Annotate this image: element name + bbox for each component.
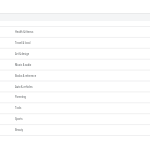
staticText: Health & fitness <box>15 31 34 34</box>
staticText: Travel & local <box>15 42 31 45</box>
button[interactable]: Music & audio <box>0 59 150 70</box>
staticText: Beauty <box>15 129 23 132</box>
staticText: Art & design <box>15 53 30 56</box>
button[interactable]: Travel & local <box>0 37 150 48</box>
staticText: Parenting <box>15 96 27 99</box>
button[interactable]: Sports <box>0 113 150 124</box>
staticText: Sports <box>15 118 23 121</box>
button[interactable]: Tools <box>0 102 150 113</box>
staticText: Books & reference <box>15 75 37 78</box>
button[interactable]: Auto & vehicles <box>0 81 150 92</box>
staticText: Tools <box>15 107 22 110</box>
button[interactable]: Health & fitness <box>0 26 150 37</box>
staticText: Music & audio <box>15 64 32 67</box>
button[interactable]: Art & design <box>0 48 150 59</box>
staticText: Auto & vehicles <box>15 86 33 89</box>
button[interactable]: Parenting <box>0 91 150 102</box>
button[interactable]: Beauty <box>0 124 150 135</box>
button[interactable]: Books & reference <box>0 70 150 81</box>
